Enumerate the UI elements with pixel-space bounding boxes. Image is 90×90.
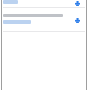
button[interactable]: Account badge [2,0,86,7]
button[interactable]: Account badge [75,18,80,23]
button[interactable]: Account badge [2,8,86,31]
button[interactable]: Account badge [75,1,80,6]
